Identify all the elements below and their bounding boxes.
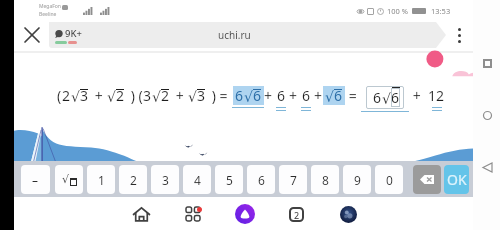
staticText: 2: [294, 209, 300, 221]
staticText: √: [325, 89, 334, 105]
button[interactable]: Tabs: [283, 201, 309, 227]
staticText: +: [289, 86, 298, 105]
staticText: Beeline: [39, 11, 57, 18]
button[interactable]: Square root: [55, 165, 83, 194]
staticText: 3: [197, 86, 206, 105]
staticText: 2: [62, 86, 71, 105]
staticText: 2: [161, 86, 170, 105]
button[interactable]: Back: [474, 154, 500, 180]
staticText: 6: [235, 86, 244, 105]
button[interactable]: Apps: [180, 201, 206, 227]
staticText: 6: [391, 88, 400, 107]
staticText: 9K+: [65, 27, 82, 40]
button[interactable]: Recents: [474, 50, 500, 76]
staticText: 6: [277, 86, 286, 105]
staticText: 1: [98, 172, 105, 188]
staticText: –: [32, 172, 39, 188]
button[interactable]: 5: [215, 165, 243, 194]
button[interactable]: 4: [183, 165, 211, 194]
button[interactable]: 9: [343, 165, 371, 194]
staticText: OK: [447, 170, 467, 189]
staticText: 6: [302, 86, 311, 105]
staticText: 100 %: [387, 6, 409, 16]
staticText: 7: [290, 172, 297, 188]
staticText: √: [107, 89, 116, 105]
button[interactable]: Alice assistant: [232, 201, 258, 227]
staticText: √: [244, 89, 253, 105]
staticText: 3: [80, 86, 89, 105]
staticText: 2: [116, 86, 125, 105]
staticText: 6: [334, 86, 343, 105]
staticText: 2: [130, 172, 137, 188]
button[interactable]: Delete: [413, 165, 441, 194]
staticText: +: [264, 86, 273, 105]
button[interactable]: Profile: [335, 201, 361, 227]
staticText: ) (: [127, 86, 143, 105]
staticText: 6: [258, 172, 265, 188]
staticText: √: [152, 89, 161, 105]
button[interactable]: 6: [247, 165, 275, 194]
staticText: +: [314, 86, 323, 105]
button[interactable]: Close: [14, 22, 49, 48]
staticText: 13:53: [431, 6, 451, 16]
staticText: =: [345, 86, 361, 105]
staticText: MegaFon: [39, 3, 61, 10]
staticText: 8: [322, 172, 329, 188]
staticText: √: [382, 91, 391, 107]
button[interactable]: 7: [279, 165, 307, 194]
staticText: √: [62, 173, 70, 186]
button[interactable]: OK: [444, 165, 469, 194]
staticText: uchi.ru: [218, 28, 251, 42]
staticText: +: [172, 86, 188, 105]
button[interactable]: Home: [474, 102, 500, 128]
staticText: 9: [354, 172, 361, 188]
staticText: 6: [373, 88, 382, 107]
button[interactable]: 9K+: [49, 22, 446, 48]
button[interactable]: 2: [119, 165, 147, 194]
staticText: √: [188, 89, 197, 105]
staticText: 5: [226, 172, 233, 188]
staticText: +: [409, 86, 425, 105]
staticText: 6: [253, 86, 262, 105]
staticText: 0: [386, 172, 393, 188]
button[interactable]: 3: [151, 165, 179, 194]
staticText: 4: [194, 172, 201, 188]
button[interactable]: More options: [446, 22, 473, 48]
button[interactable]: 0: [375, 165, 403, 194]
button[interactable]: 1: [87, 165, 115, 194]
staticText: ) =: [208, 86, 232, 105]
button[interactable]: 8: [311, 165, 339, 194]
staticText: √: [71, 89, 80, 105]
staticText: (: [57, 86, 62, 105]
staticText: +: [91, 86, 107, 105]
button[interactable]: Home: [128, 201, 154, 227]
button[interactable]: –: [21, 165, 50, 194]
staticText: 3: [162, 172, 169, 188]
staticText: 3: [143, 86, 152, 105]
staticText: 12: [428, 86, 445, 105]
